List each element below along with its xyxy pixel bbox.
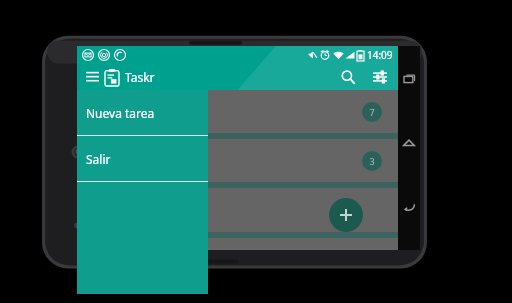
button[interactable] bbox=[77, 238, 398, 250]
button[interactable]: Filter settings bbox=[368, 65, 392, 89]
button[interactable]: Search bbox=[336, 65, 360, 89]
staticText: Taskr bbox=[125, 69, 155, 85]
staticText: Salir bbox=[86, 151, 111, 167]
button[interactable]: Add task bbox=[329, 198, 363, 232]
button[interactable]: Nueva tarea bbox=[77, 90, 208, 135]
staticText: 14:09 bbox=[367, 48, 393, 62]
button[interactable]: 3 bbox=[77, 139, 398, 182]
button[interactable]: 7 bbox=[77, 90, 398, 133]
button[interactable]: Salir bbox=[77, 136, 208, 181]
staticText: 3 bbox=[369, 155, 375, 167]
staticText: Nueva tarea bbox=[86, 105, 155, 121]
button[interactable] bbox=[77, 188, 398, 232]
button[interactable]: Recent apps bbox=[398, 68, 420, 90]
button[interactable]: Open navigation drawer bbox=[82, 67, 102, 87]
staticText: 7 bbox=[369, 106, 375, 118]
button[interactable]: Home bbox=[398, 132, 420, 154]
button[interactable]: Back bbox=[398, 196, 420, 218]
